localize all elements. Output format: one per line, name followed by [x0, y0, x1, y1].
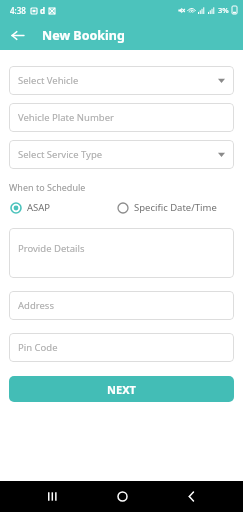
- staticText: ASAP: [27, 201, 51, 214]
- staticText: 4:38: [10, 5, 26, 16]
- button[interactable]: Select Vehicle: [9, 66, 234, 95]
- staticText: NEXT: [107, 382, 136, 397]
- button[interactable]: NEXT: [9, 376, 234, 402]
- staticText: Provide Details: [18, 242, 85, 255]
- staticText: New Booking: [42, 27, 125, 44]
- button[interactable]: Specific Date/Time: [116, 199, 218, 216]
- staticText: Specific Date/Time: [134, 201, 217, 214]
- button[interactable]: Back: [174, 481, 208, 512]
- button[interactable]: Back: [5, 23, 29, 47]
- staticText: Vehicle Plate Number: [18, 111, 114, 124]
- button[interactable]: Pin Code: [9, 333, 234, 362]
- staticText: Select Vehicle: [18, 74, 79, 87]
- button[interactable]: ASAP: [9, 199, 52, 216]
- staticText: Address: [18, 299, 54, 312]
- staticText: 3%: [218, 5, 229, 15]
- button[interactable]: Vehicle Plate Number: [9, 103, 234, 132]
- button[interactable]: Home: [105, 481, 139, 512]
- staticText: When to Schedule: [9, 181, 86, 193]
- button[interactable]: Address: [9, 291, 234, 320]
- button[interactable]: Select Service Type: [9, 140, 234, 169]
- button[interactable]: Provide Details: [9, 228, 234, 278]
- staticText: d: [40, 5, 46, 16]
- staticText: Select Service Type: [18, 148, 103, 161]
- button[interactable]: Recents: [35, 481, 69, 512]
- staticText: Pin Code: [18, 341, 58, 354]
